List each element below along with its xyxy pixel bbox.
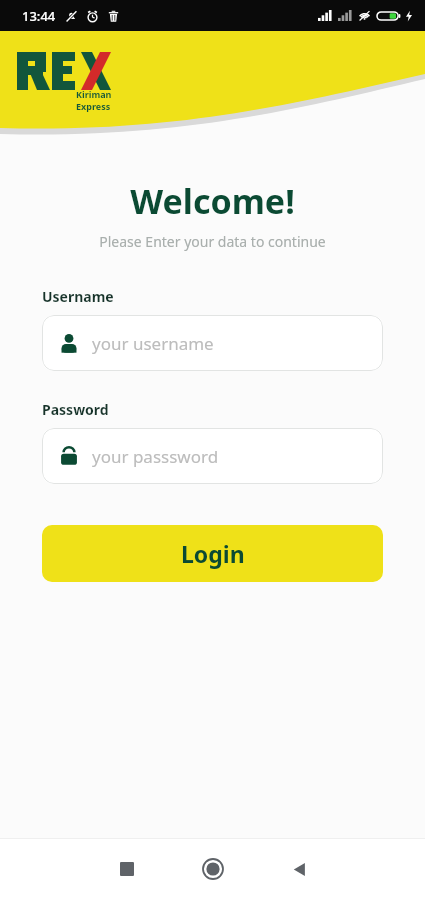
- button[interactable]: your passsword: [42, 428, 383, 484]
- button[interactable]: Recent apps: [99, 841, 155, 897]
- staticText: Password: [42, 400, 109, 419]
- staticText: Login: [181, 538, 245, 569]
- button[interactable]: Login: [42, 525, 383, 582]
- button[interactable]: your username: [42, 315, 383, 371]
- staticText: Express: [76, 100, 111, 112]
- staticText: Kiriman: [76, 88, 112, 100]
- button[interactable]: Back: [271, 841, 327, 897]
- staticText: 13:44: [22, 7, 56, 25]
- staticText: Welcome!: [130, 178, 295, 224]
- staticText: your username: [92, 332, 214, 355]
- button[interactable]: Home: [185, 841, 241, 897]
- staticText: Username: [42, 287, 114, 306]
- staticText: your passsword: [92, 445, 219, 468]
- staticText: Please Enter your data to continue: [99, 232, 326, 251]
